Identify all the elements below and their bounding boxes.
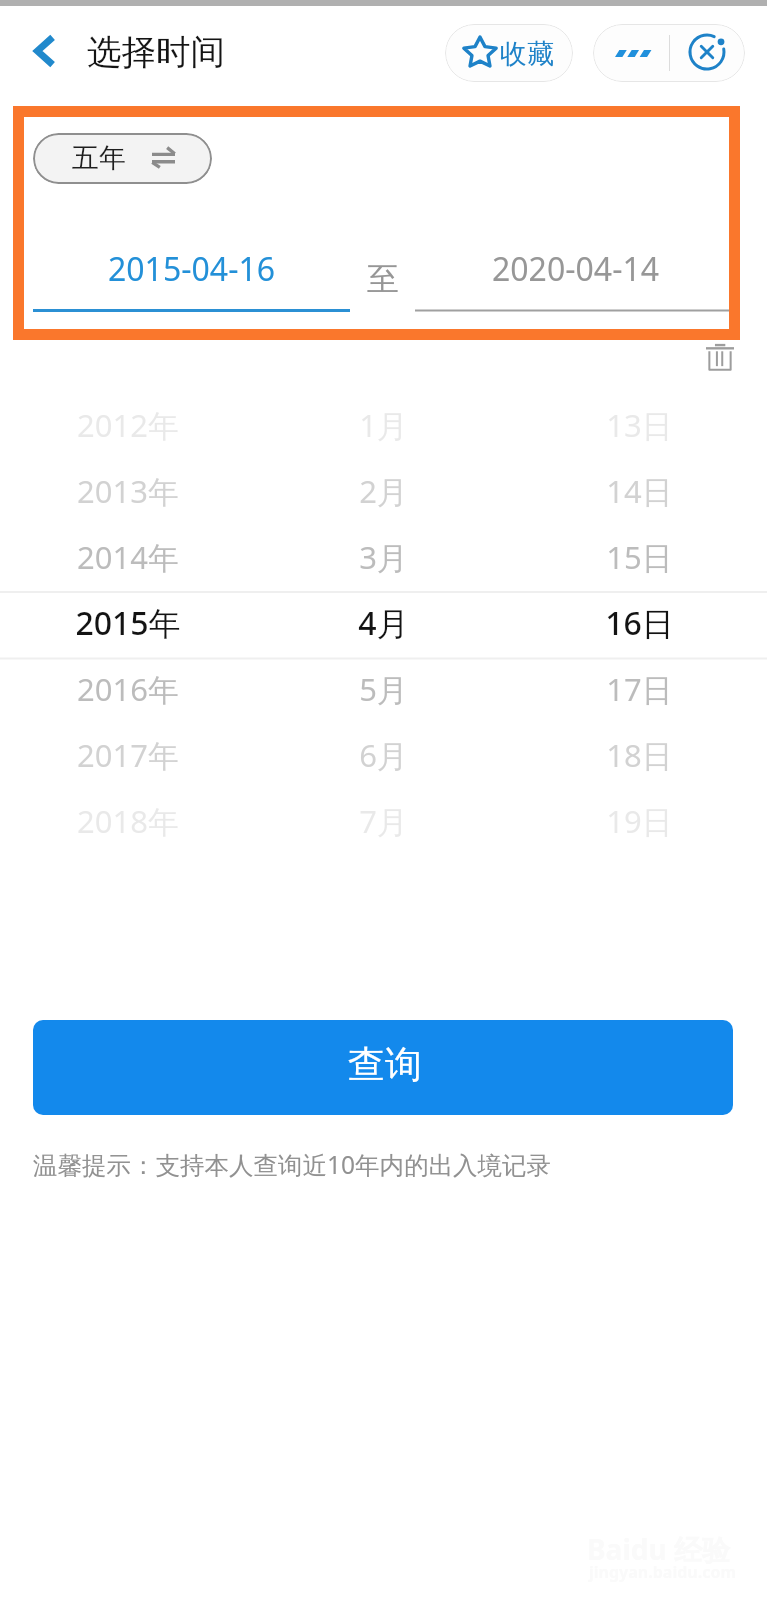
staticText: 4月	[358, 601, 409, 645]
staticText: 2012年	[77, 404, 179, 446]
button[interactable]: 2015年	[0, 590, 255, 656]
staticText: 7月	[359, 800, 408, 842]
button[interactable]: 16日	[511, 590, 767, 656]
staticText: 2013年	[77, 470, 179, 512]
button[interactable]: 15日	[511, 524, 767, 590]
button[interactable]: 17日	[511, 656, 767, 722]
button[interactable]: 2013年	[0, 458, 255, 524]
staticText: 2015-04-16	[108, 247, 276, 291]
staticText: 2020-04-14	[492, 247, 660, 291]
staticText: 6月	[359, 734, 408, 776]
staticText: 17日	[606, 668, 673, 710]
button[interactable]: 3月	[255, 524, 511, 590]
staticText: 收藏	[500, 37, 554, 71]
button[interactable]: 2014年	[0, 524, 255, 590]
staticText: 2015年	[75, 601, 181, 645]
staticText: 14日	[606, 470, 673, 512]
staticText: 查询	[348, 1041, 422, 1088]
staticText: 2月	[359, 470, 408, 512]
button[interactable]: 收藏	[445, 24, 573, 82]
button[interactable]: 2020-04-14	[415, 240, 730, 312]
button[interactable]: 13日	[511, 392, 767, 458]
button[interactable]: 2018年	[0, 788, 255, 854]
button[interactable]: 14日	[511, 458, 767, 524]
staticText: 5月	[359, 668, 408, 710]
button[interactable]: 18日	[511, 722, 767, 788]
staticText: 18日	[606, 734, 673, 776]
button[interactable]: 4月	[255, 590, 511, 656]
staticText: 温馨提示：支持本人查询近10年内的出入境记录	[33, 1148, 552, 1181]
staticText: 3月	[359, 536, 408, 578]
button[interactable]: 6月	[255, 722, 511, 788]
staticText: 选择时间	[87, 31, 225, 74]
button[interactable]: 2012年	[0, 392, 255, 458]
button[interactable]: 19日	[511, 788, 767, 854]
staticText: 2017年	[77, 734, 179, 776]
button[interactable]: 2015-04-16	[33, 240, 350, 312]
staticText: 2016年	[77, 668, 179, 710]
staticText: 五年	[72, 141, 126, 175]
button[interactable]: Close	[670, 24, 745, 82]
button[interactable]: 2017年	[0, 722, 255, 788]
staticText: 13日	[606, 404, 673, 446]
button[interactable]: Back	[19, 25, 71, 77]
staticText: 16日	[605, 601, 674, 645]
staticText: 19日	[606, 800, 673, 842]
staticText: 15日	[606, 536, 673, 578]
button[interactable]: Delete	[697, 334, 743, 380]
staticText: 1月	[359, 404, 408, 446]
button[interactable]: 2016年	[0, 656, 255, 722]
button[interactable]: More options	[593, 24, 669, 82]
staticText: 2014年	[77, 536, 179, 578]
button[interactable]: 五年	[33, 133, 212, 184]
staticText: 2018年	[77, 800, 179, 842]
staticText: 至	[367, 259, 399, 299]
button[interactable]: 5月	[255, 656, 511, 722]
button[interactable]: 查询	[33, 1020, 733, 1115]
button[interactable]: 2月	[255, 458, 511, 524]
